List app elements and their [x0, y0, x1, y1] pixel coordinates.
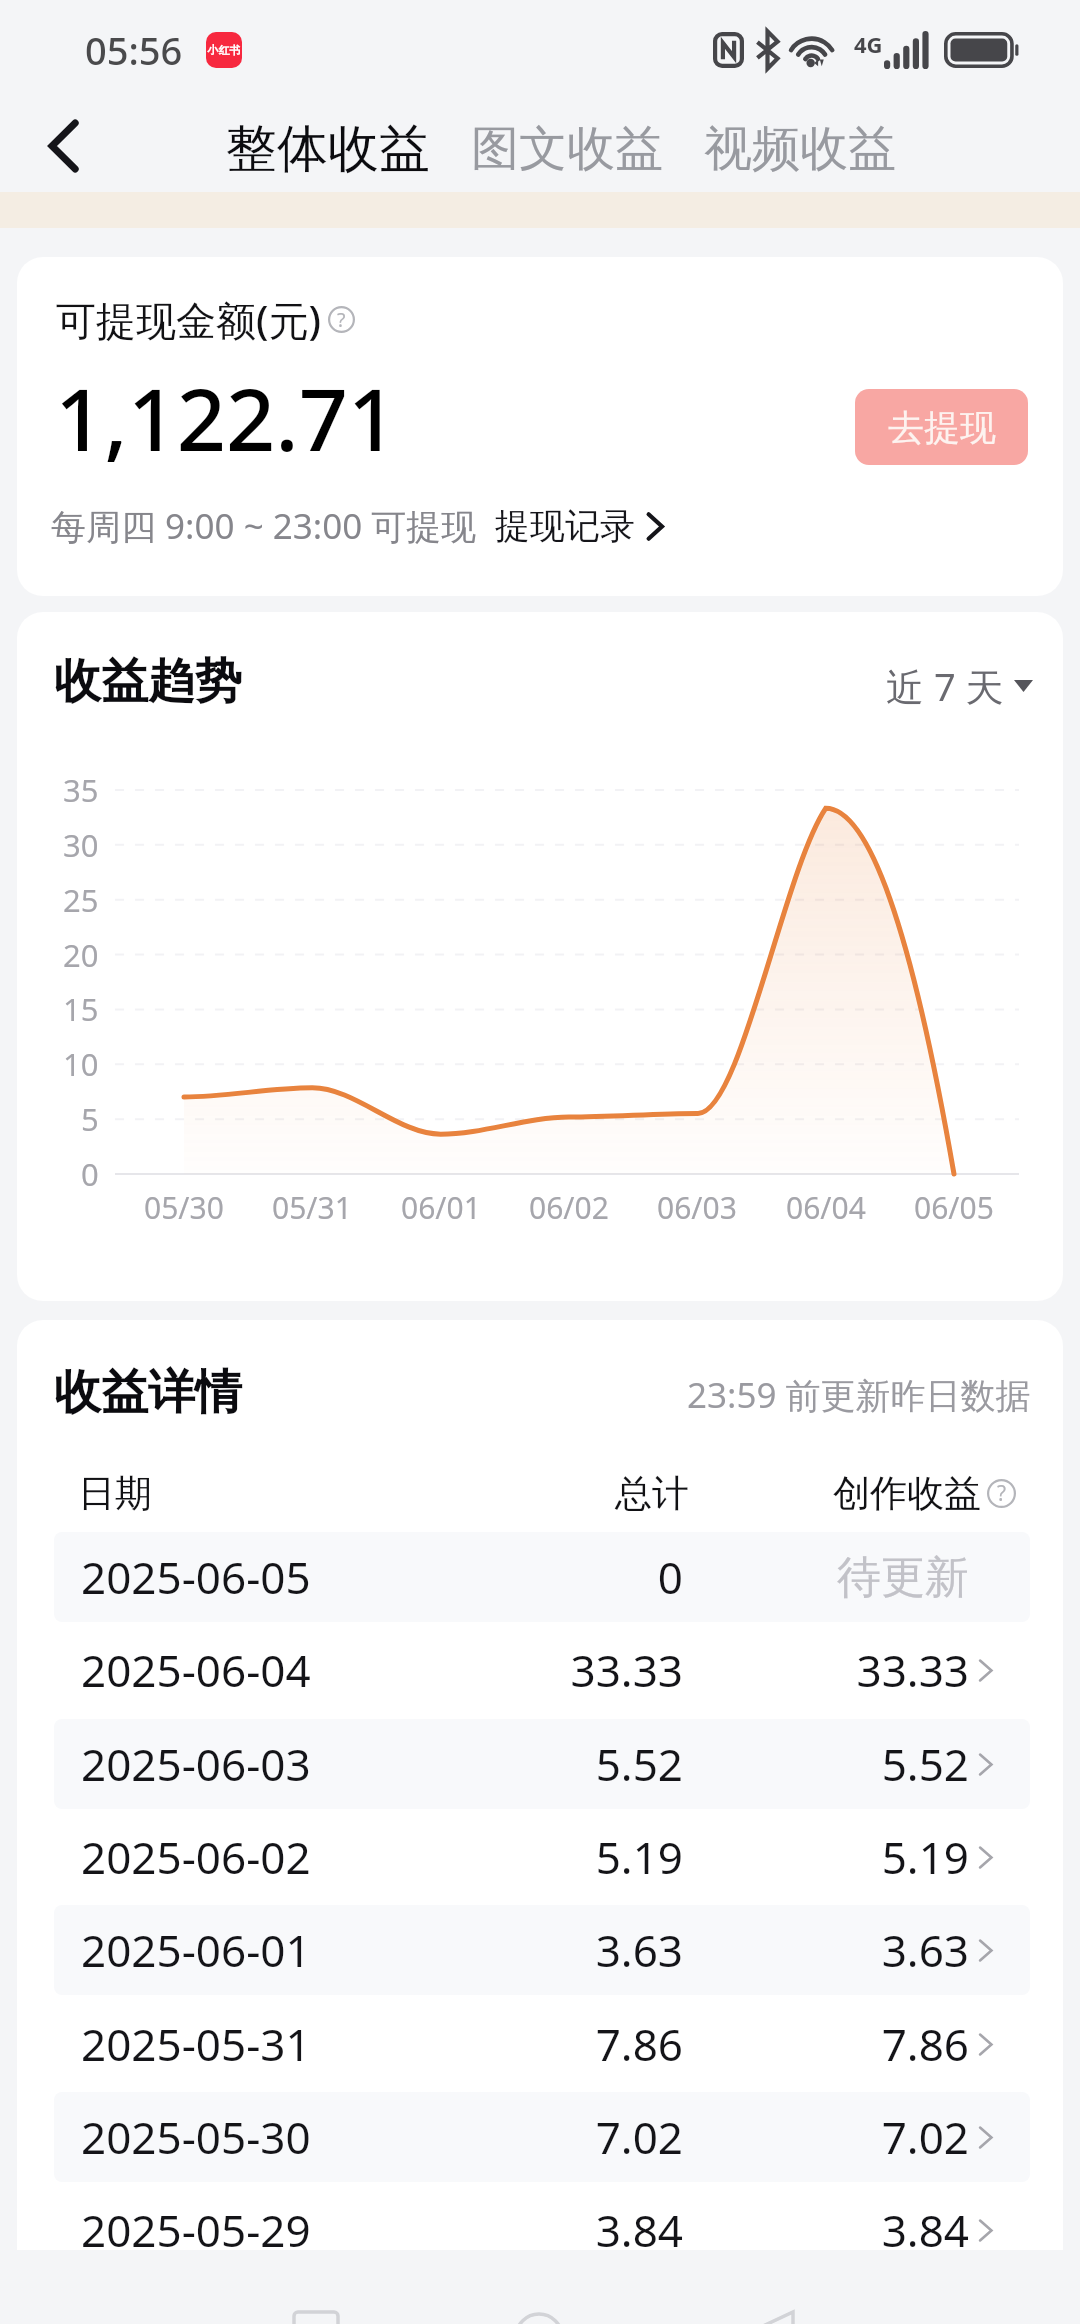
button[interactable]: 整体收益 — [226, 117, 430, 181]
button[interactable]: 2025-05-30 — [54, 2092, 1030, 2182]
staticText: 图文收益 — [471, 119, 663, 179]
staticText: 05/30 — [144, 1187, 224, 1228]
staticText: 06/04 — [786, 1187, 866, 1228]
staticText: 4G — [854, 29, 883, 59]
staticText: 05:56 — [85, 24, 183, 76]
staticText: 3.84 — [704, 2200, 969, 2250]
button[interactable]: 2025-06-01 — [54, 1905, 1030, 1995]
staticText: 7.02 — [454, 2107, 683, 2167]
staticText: 5.19 — [704, 1827, 969, 1887]
button[interactable]: Back — [748, 2312, 793, 2324]
staticText: 日期 — [78, 1470, 152, 1517]
staticText: 近 7 天 — [886, 660, 1004, 712]
staticText: 33.33 — [704, 1640, 969, 1700]
button[interactable]: 2025-06-03 — [54, 1719, 1030, 1809]
staticText: 收益趋势 — [54, 652, 242, 711]
staticText: 整体收益 — [226, 117, 430, 181]
staticText: 33.33 — [454, 1640, 683, 1700]
button[interactable]: Recents — [294, 2312, 338, 2324]
staticText: 2025-06-04 — [81, 1640, 311, 1700]
staticText: 0 — [454, 1547, 683, 1607]
button[interactable]: 近 7 天 — [886, 660, 1033, 712]
staticText: 待更新 — [704, 1550, 969, 1605]
staticText: 5 — [81, 1098, 99, 1140]
button[interactable]: Back — [26, 108, 102, 184]
button[interactable]: 2025-06-02 — [54, 1812, 1030, 1902]
staticText: 收益详情 — [54, 1363, 242, 1422]
staticText: 2025-05-31 — [81, 2014, 311, 2074]
button[interactable]: 去提现 — [855, 389, 1028, 465]
button[interactable]: 图文收益 — [471, 119, 663, 179]
staticText: 去提现 — [888, 405, 996, 450]
staticText: 25 — [63, 879, 99, 921]
staticText: 35 — [63, 769, 99, 811]
staticText: 5.52 — [454, 1734, 683, 1794]
staticText: 23:59 前更新昨日数据 — [687, 1371, 1031, 1419]
staticText: 7.86 — [454, 2014, 683, 2074]
staticText: 3.63 — [454, 1920, 683, 1980]
staticText: 小红书 — [207, 43, 241, 57]
staticText: 2025-06-03 — [81, 1734, 311, 1794]
staticText: 视频收益 — [704, 119, 896, 179]
staticText: 5.19 — [454, 1827, 683, 1887]
staticText: 15 — [63, 988, 99, 1030]
staticText: 2025-06-01 — [81, 1920, 311, 1980]
staticText: 提现记录 — [495, 504, 635, 548]
button[interactable]: Home — [514, 2312, 564, 2324]
staticText: 2025-05-30 — [81, 2107, 311, 2167]
button[interactable]: 视频收益 — [704, 119, 896, 179]
staticText: 20 — [63, 934, 99, 976]
button[interactable]: 2025-05-31 — [54, 1999, 1030, 2089]
staticText: 06/05 — [914, 1187, 994, 1228]
staticText: 3.84 — [454, 2200, 683, 2250]
staticText: 1,122.71 — [55, 359, 398, 476]
staticText: 7.02 — [704, 2107, 969, 2167]
staticText: 2025-05-29 — [81, 2200, 311, 2250]
staticText: 创作收益 — [833, 1470, 981, 1517]
button[interactable]: 2025-06-04 — [54, 1625, 1030, 1715]
staticText: ? — [337, 306, 346, 332]
staticText: 10 — [63, 1043, 99, 1085]
staticText: 0 — [81, 1153, 99, 1195]
staticText: 2025-06-02 — [81, 1827, 311, 1887]
staticText: 30 — [63, 824, 99, 866]
staticText: 06/02 — [529, 1187, 609, 1228]
staticText: 2025-06-05 — [81, 1547, 311, 1607]
staticText: 5.52 — [704, 1734, 969, 1794]
staticText: 05/31 — [272, 1187, 352, 1228]
staticText: 3.63 — [704, 1920, 969, 1980]
staticText: 06/01 — [401, 1187, 481, 1228]
staticText: 7.86 — [704, 2014, 969, 2074]
staticText: ? — [997, 1479, 1007, 1507]
button[interactable]: 2025-05-29 — [54, 2185, 1030, 2250]
staticText: 总计 — [615, 1470, 689, 1517]
staticText: 可提现金额(元) — [56, 292, 321, 347]
staticText: 06/03 — [657, 1187, 737, 1228]
button[interactable]: 提现记录 — [495, 504, 665, 548]
button[interactable]: 2025-06-05 — [54, 1532, 1030, 1622]
staticText: 每周四 9:00 ~ 23:00 可提现 — [51, 502, 477, 550]
